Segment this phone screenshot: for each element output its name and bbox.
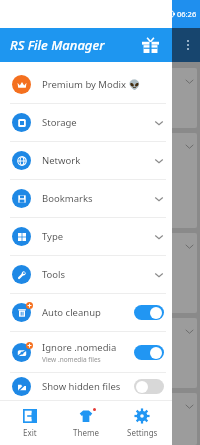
staticText: View .nomedia files <box>42 355 101 364</box>
staticText: ted <box>4 324 18 335</box>
button[interactable]: Tools <box>0 256 172 293</box>
staticText: Theme <box>73 427 99 438</box>
button[interactable]: Type <box>0 218 172 255</box>
staticText: AV <box>4 239 15 250</box>
staticText: Tools <box>42 268 66 281</box>
button[interactable]: Bookmarks <box>0 180 172 217</box>
button[interactable]: Toggle off <box>134 379 164 394</box>
staticText: Network <box>42 154 81 167</box>
staticText: Show hidden files <box>42 380 121 393</box>
staticText: Clean <box>4 88 20 96</box>
button[interactable]: Show hidden files <box>0 373 172 400</box>
staticText: Settings <box>127 427 158 438</box>
staticText: RS File Manager <box>10 36 105 54</box>
staticText: Exit <box>23 427 37 438</box>
staticText: 06:26 <box>177 9 197 19</box>
staticText: Bookmarks <box>42 192 93 205</box>
button[interactable]: Toggle on <box>134 305 164 320</box>
button[interactable]: Theme <box>60 401 112 445</box>
staticText: Ignore .nomedia <box>42 341 117 354</box>
staticText: ly... <box>4 74 18 85</box>
button[interactable]: Network <box>0 142 172 179</box>
button[interactable]: Auto cleanup <box>0 294 172 331</box>
staticText: Storage <box>42 116 77 129</box>
button[interactable]: Ignore .nomedia <box>0 332 172 372</box>
staticText: Premium by Modix 👽 <box>42 78 141 91</box>
button[interactable]: Gift <box>138 33 162 57</box>
button[interactable]: Storage <box>0 104 172 141</box>
button[interactable]: Settings <box>116 401 168 445</box>
staticText: Auto cleanup <box>42 306 101 319</box>
button[interactable]: Premium by Modix 👽 <box>0 66 172 103</box>
button[interactable]: Toggle on <box>134 345 164 360</box>
staticText: Type <box>42 230 64 243</box>
button[interactable]: Exit <box>4 401 56 445</box>
staticText: ssed <box>4 153 17 161</box>
